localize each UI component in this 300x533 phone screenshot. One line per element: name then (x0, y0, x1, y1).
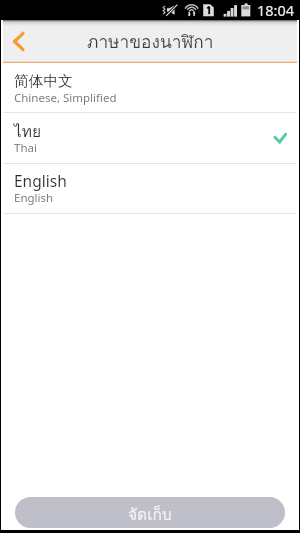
button[interactable]: Back (3, 21, 41, 59)
staticText: English (14, 190, 54, 206)
button[interactable]: 简体中文 (3, 63, 297, 112)
staticText: 简体中文 (14, 72, 73, 91)
staticText: Thai (14, 140, 37, 156)
staticText: ไทย (14, 119, 42, 144)
staticText: English (14, 170, 67, 191)
staticText: จัดเก็บ (128, 502, 172, 527)
button[interactable]: ไทย (3, 113, 297, 163)
button[interactable]: English (3, 164, 297, 213)
staticText: ภาษาของนาฬิกา (87, 28, 214, 55)
button[interactable]: จัดเก็บ (15, 497, 285, 528)
staticText: Chinese, Simplified (14, 90, 117, 106)
staticText: 18:04 (257, 0, 295, 20)
